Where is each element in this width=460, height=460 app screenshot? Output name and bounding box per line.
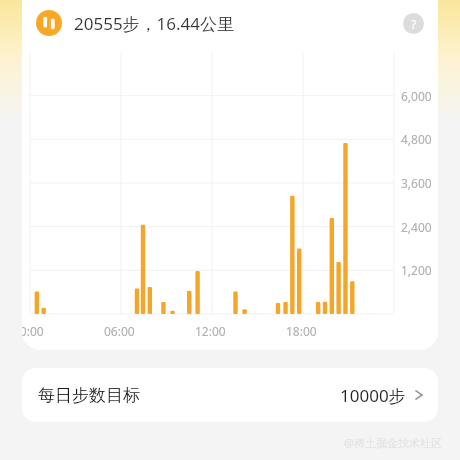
staticText: 1,200	[401, 262, 432, 278]
button[interactable]: Help	[403, 13, 424, 34]
staticText: 6,000	[401, 88, 432, 104]
staticText: 每日步数目标	[38, 385, 140, 406]
staticText: 3,600	[401, 175, 432, 191]
staticText: ?	[411, 16, 417, 32]
staticText: 06:00	[104, 323, 135, 339]
staticText: 10000步	[340, 384, 406, 407]
staticText: 20555步，16.44公里	[74, 12, 235, 35]
staticText: 00:00	[22, 323, 44, 339]
button[interactable]: 每日步数目标	[22, 368, 438, 422]
staticText: 4,800	[401, 131, 432, 147]
staticText: 2,400	[401, 219, 432, 235]
staticText: 18:00	[286, 323, 317, 339]
staticText: 12:00	[195, 323, 226, 339]
button[interactable]: Steps	[36, 10, 62, 36]
staticText: @稀土掘金技术社区	[344, 435, 442, 450]
